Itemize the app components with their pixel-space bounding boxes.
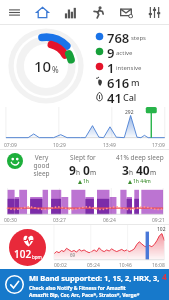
- staticText: 00:30: [4, 217, 17, 224]
- button[interactable]: Supported devices: [0, 269, 169, 300]
- staticText: 69: [70, 252, 76, 258]
- button[interactable]: 102: [0, 225, 169, 269]
- staticText: 07:09: [4, 142, 17, 149]
- staticText: 1h: [83, 178, 89, 185]
- staticText: Slept for: [70, 153, 96, 162]
- button[interactable]: Home: [28, 0, 56, 24]
- button[interactable]: Settings: [140, 0, 168, 24]
- staticText: 41: [107, 89, 122, 104]
- staticText: h: [76, 168, 81, 177]
- staticText: 05:24: [87, 262, 100, 269]
- staticText: 768: [107, 29, 130, 44]
- button[interactable]: Statistics: [56, 0, 84, 24]
- staticText: 1: [107, 59, 115, 74]
- staticText: steps: [131, 34, 146, 42]
- staticText: 40: [136, 162, 150, 178]
- staticText: 102: [157, 226, 166, 233]
- button[interactable]: Messages: [112, 0, 140, 24]
- staticText: 06:24: [103, 217, 116, 224]
- staticText: 10: [34, 56, 52, 76]
- staticText: 1h 44m: [133, 178, 151, 185]
- staticText: 9: [107, 44, 115, 59]
- staticText: Amazfit Bip, Cor, Arc, Pace*, Stratos*, …: [29, 292, 140, 299]
- staticText: 16:08: [152, 262, 165, 269]
- staticText: Check also Notify & Fitness for Amazfit: [29, 285, 126, 292]
- button[interactable]: 10: [0, 25, 169, 149]
- staticText: Cal: [123, 91, 137, 103]
- staticText: 4: [162, 271, 167, 283]
- staticText: 17:09: [152, 142, 165, 149]
- button[interactable]: Very good sleep: [0, 150, 169, 224]
- staticText: 102: [14, 247, 32, 261]
- staticText: 0: [83, 162, 90, 178]
- button[interactable]: Workout: [84, 0, 112, 24]
- staticText: Mi Band supported: 1, 1S, 2, HRX, 3,: [29, 273, 162, 283]
- staticText: 00:02: [54, 262, 67, 269]
- staticText: m: [131, 76, 140, 88]
- staticText: 3: [122, 162, 129, 178]
- staticText: 292: [125, 109, 134, 116]
- staticText: m: [150, 168, 157, 177]
- staticText: 03:27: [53, 217, 66, 224]
- staticText: 10:29: [53, 142, 66, 149]
- button[interactable]: Menu: [0, 0, 28, 24]
- staticText: h: [129, 168, 134, 177]
- other: Supported devices: [5, 275, 24, 294]
- staticText: bpm: [32, 254, 42, 260]
- staticText: 616: [107, 74, 130, 89]
- staticText: 41% deep sleep: [116, 153, 164, 162]
- staticText: intensive: [116, 64, 142, 72]
- staticText: 10:46: [119, 262, 132, 269]
- staticText: m: [90, 168, 97, 177]
- staticText: 09:21: [152, 217, 165, 224]
- staticText: Very good sleep: [27, 153, 56, 178]
- staticText: 9: [69, 162, 76, 178]
- staticText: 13:49: [103, 142, 116, 149]
- staticText: %: [52, 64, 59, 75]
- staticText: active: [116, 49, 133, 57]
